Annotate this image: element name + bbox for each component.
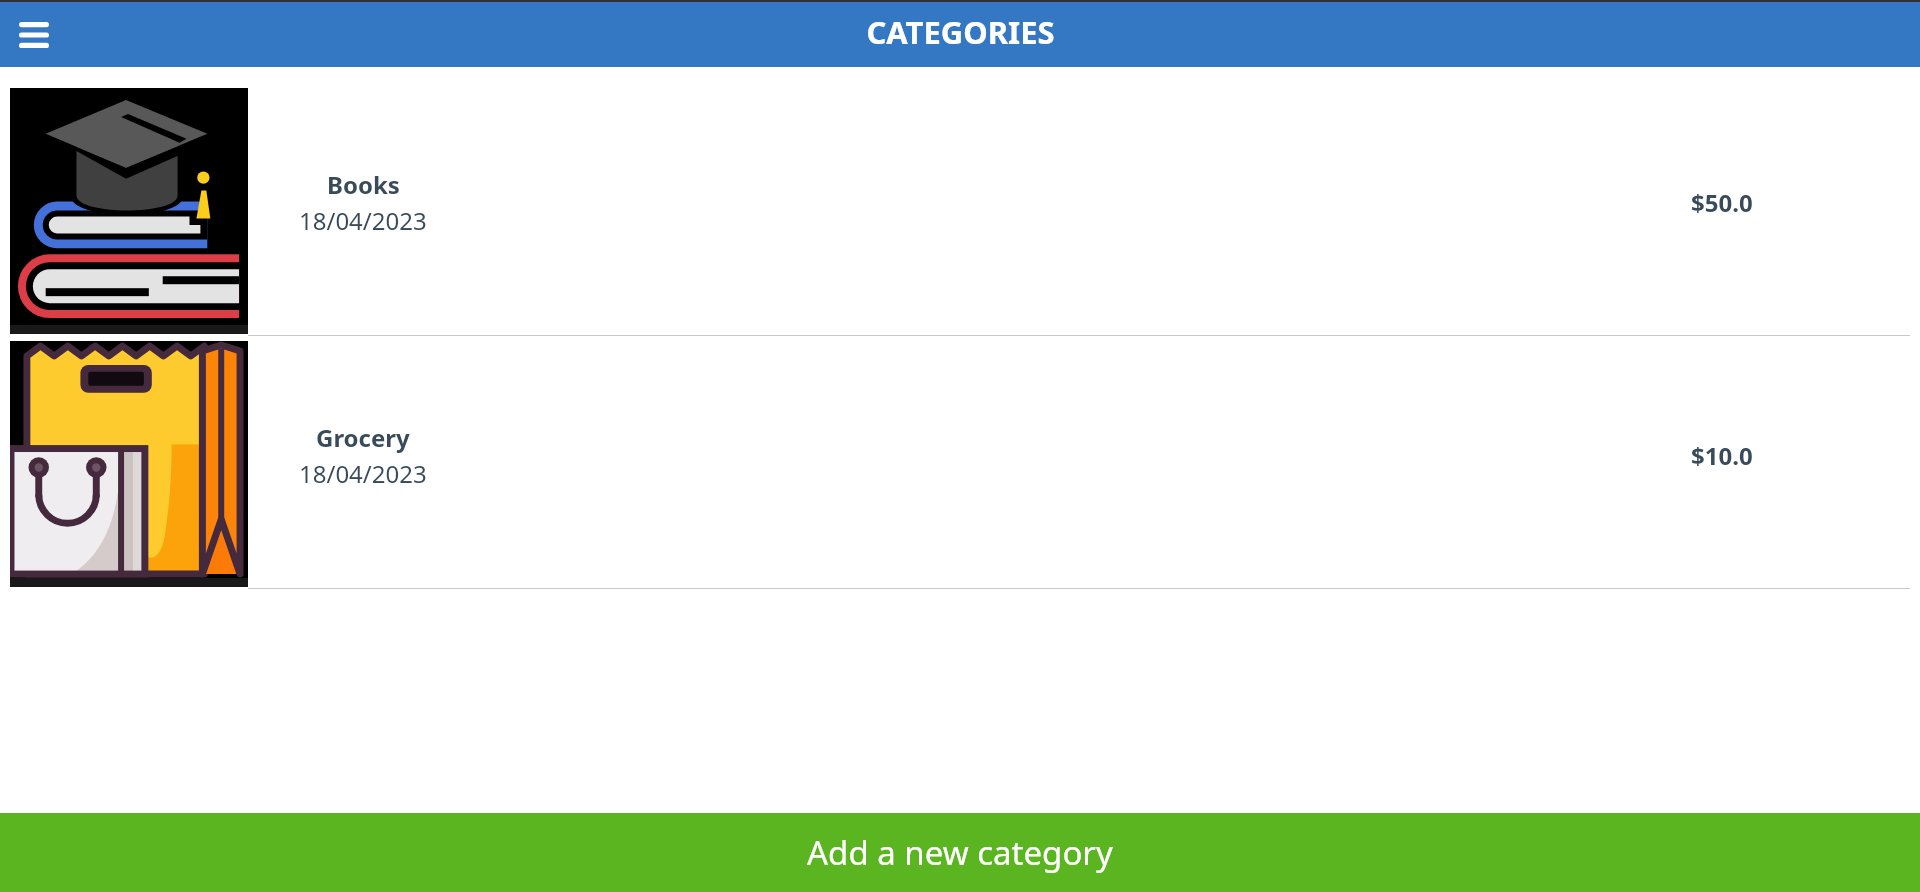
staticText: Grocery [316, 421, 410, 454]
button[interactable]: Books [0, 67, 1920, 336]
staticText: Books [327, 168, 400, 201]
staticText: $50.0 [1691, 186, 1753, 219]
staticText: Add a new category [807, 830, 1113, 875]
staticText: CATEGORIES [866, 11, 1055, 53]
button[interactable]: Open navigation menu [0, 0, 68, 67]
button[interactable]: Add a new category [0, 813, 1920, 892]
button[interactable]: Grocery [0, 336, 1920, 589]
staticText: $10.0 [1691, 439, 1753, 472]
staticText: 18/04/2023 [299, 204, 427, 237]
staticText: 18/04/2023 [299, 457, 427, 490]
